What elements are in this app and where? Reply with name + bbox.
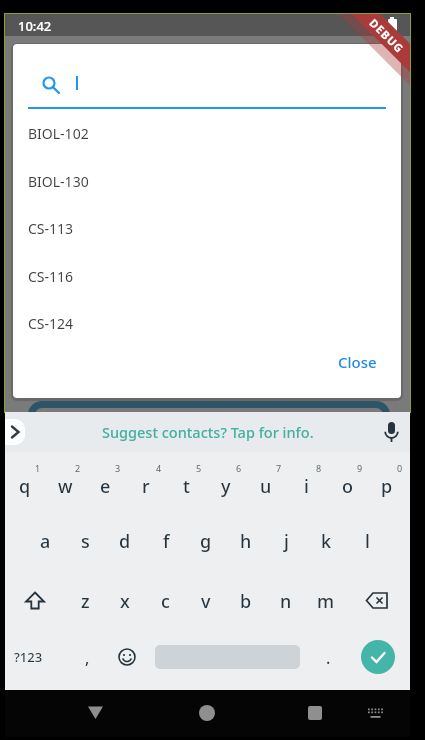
staticText: e	[100, 474, 111, 499]
staticText: 3	[115, 462, 121, 474]
staticText: r	[142, 474, 150, 499]
staticText: Close	[338, 352, 377, 372]
button[interactable]: g	[187, 525, 225, 557]
staticText: j	[284, 529, 289, 554]
button[interactable]: CS-124	[13, 299, 401, 347]
staticText: s	[81, 529, 90, 554]
button[interactable]: p	[368, 470, 406, 502]
staticText: g	[200, 529, 212, 554]
staticText: f	[163, 529, 170, 554]
button[interactable]: c	[146, 585, 184, 617]
button[interactable]	[308, 706, 322, 720]
staticText: h	[240, 529, 252, 554]
button[interactable]	[361, 640, 395, 674]
staticText: 2	[75, 462, 81, 474]
staticText: 0	[397, 462, 403, 474]
button[interactable]: l	[348, 525, 386, 557]
button[interactable]: n	[267, 585, 305, 617]
button[interactable]	[88, 706, 103, 719]
button[interactable]: m	[307, 585, 345, 617]
button[interactable]: j	[267, 525, 305, 557]
button[interactable]: o	[328, 470, 366, 502]
button[interactable]: i	[287, 470, 325, 502]
staticText: 7	[276, 462, 282, 474]
button[interactable]: h	[227, 525, 265, 557]
staticText: BIOL-130	[28, 172, 89, 191]
staticText: a	[40, 529, 51, 554]
staticText: c	[161, 589, 170, 614]
button[interactable]: e	[86, 470, 124, 502]
staticText: i	[304, 474, 309, 499]
staticText: q	[19, 474, 31, 499]
staticText: 4	[156, 462, 162, 474]
button[interactable]	[199, 705, 215, 721]
staticText: CS-124	[28, 314, 74, 333]
button[interactable]	[24, 590, 46, 612]
button[interactable]: t	[167, 470, 205, 502]
button[interactable]: w	[46, 470, 84, 502]
staticText: d	[119, 529, 131, 554]
staticText: o	[342, 474, 353, 499]
staticText: ,	[85, 647, 90, 669]
button[interactable]: CS-113	[13, 204, 401, 252]
button[interactable]	[5, 419, 25, 445]
staticText: 5	[196, 462, 202, 474]
staticText: ?123	[14, 648, 43, 666]
button[interactable]: z	[66, 585, 104, 617]
button[interactable]: q	[6, 470, 44, 502]
staticText: p	[381, 474, 393, 499]
button[interactable]: Close	[325, 346, 389, 378]
staticText: .	[326, 647, 331, 669]
button[interactable]	[366, 592, 390, 610]
staticText: x	[120, 589, 130, 614]
staticText: u	[260, 474, 272, 499]
button[interactable]: .	[309, 642, 347, 674]
button[interactable]: a	[26, 525, 64, 557]
button[interactable]: ,	[68, 642, 106, 674]
button[interactable]: BIOL-130	[13, 157, 401, 205]
button[interactable]: r	[127, 470, 165, 502]
staticText: k	[321, 529, 332, 554]
button[interactable]: v	[187, 585, 225, 617]
staticText: l	[365, 529, 370, 554]
staticText: CS-116	[28, 267, 74, 286]
button[interactable]	[118, 648, 136, 666]
staticText: CS-113	[28, 219, 74, 238]
button[interactable]	[367, 708, 384, 719]
button[interactable]: ?123	[7, 645, 49, 669]
button[interactable]	[383, 421, 400, 443]
staticText: n	[280, 589, 292, 614]
staticText: 10:42	[18, 17, 52, 35]
staticText: 1	[35, 462, 41, 474]
button[interactable]: k	[307, 525, 345, 557]
staticText: w	[58, 474, 73, 499]
button[interactable]: b	[227, 585, 265, 617]
staticText: z	[81, 589, 90, 614]
button[interactable]: u	[247, 470, 285, 502]
staticText: 6	[236, 462, 242, 474]
staticText: b	[240, 589, 252, 614]
staticText: v	[201, 589, 211, 614]
staticText: y	[221, 474, 231, 499]
button[interactable]: BIOL-102	[13, 109, 401, 157]
staticText: 9	[357, 462, 363, 474]
button[interactable]: CS-116	[13, 252, 401, 300]
staticText: m	[317, 589, 335, 614]
staticText: DEBUG	[366, 15, 407, 56]
button[interactable]: x	[106, 585, 144, 617]
button[interactable]: s	[66, 525, 104, 557]
button[interactable]: d	[106, 525, 144, 557]
button[interactable]: Suggest contacts? Tap for info.	[5, 412, 410, 452]
staticText: BIOL-102	[28, 124, 89, 143]
button[interactable]: f	[147, 525, 185, 557]
staticText: 8	[316, 462, 322, 474]
staticText: t	[183, 474, 190, 499]
staticText: Suggest contacts? Tap for info.	[102, 422, 314, 442]
button[interactable]: y	[207, 470, 245, 502]
